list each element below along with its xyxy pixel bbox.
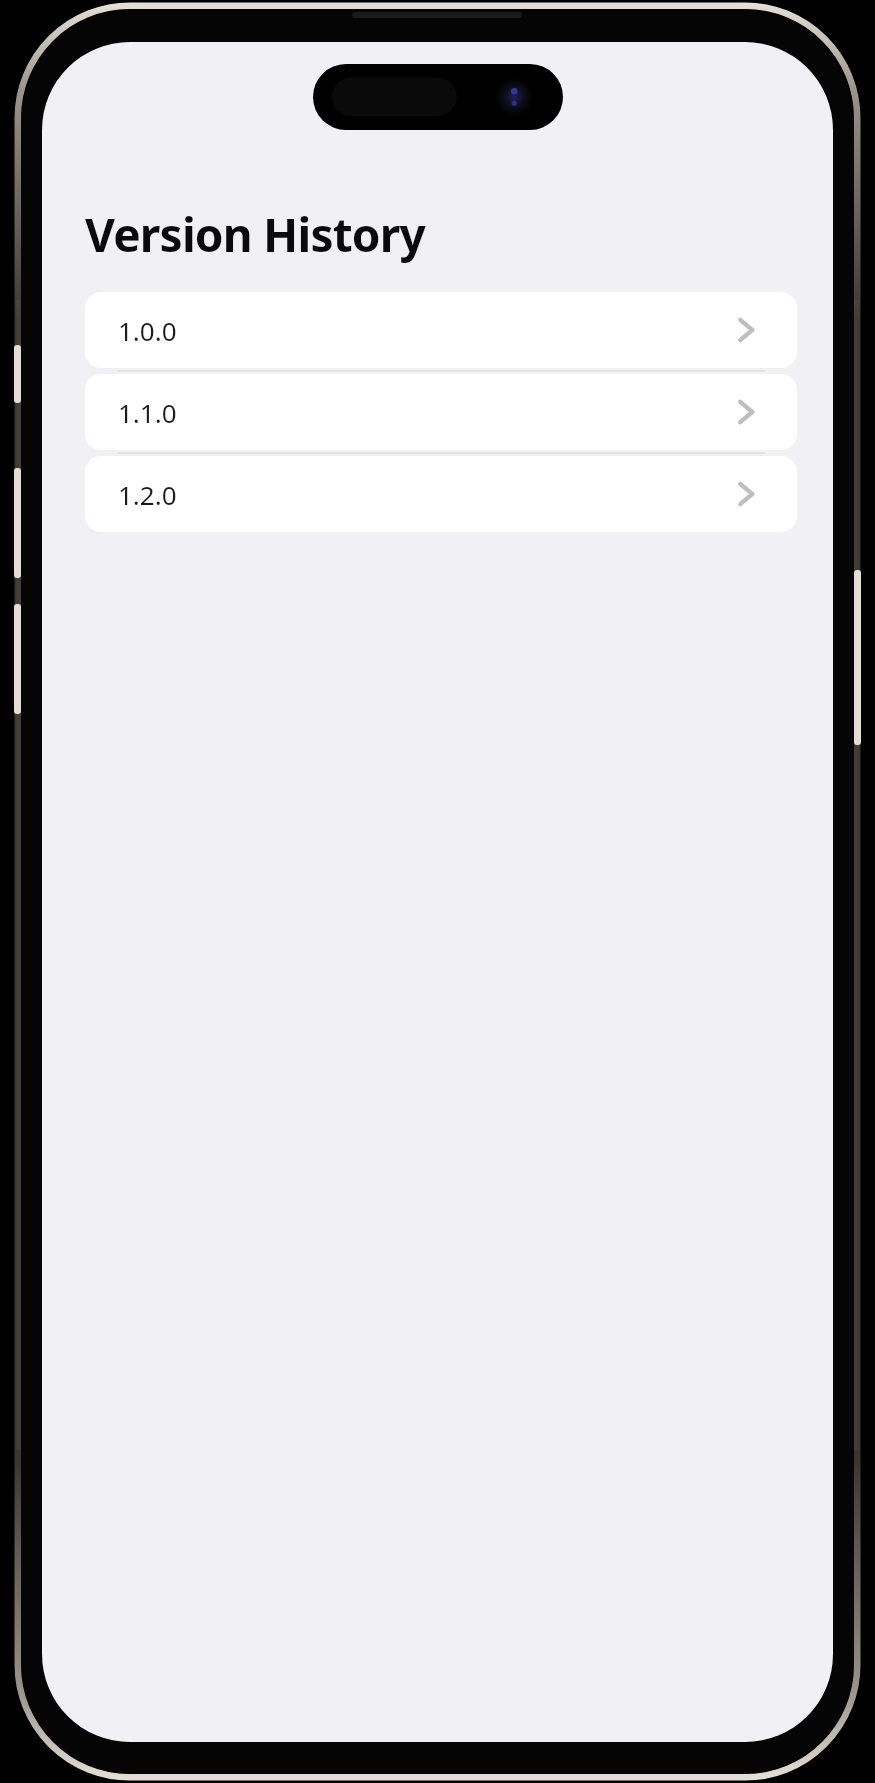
other: Open version details <box>733 395 759 429</box>
button[interactable]: 1.2.0 <box>85 456 797 532</box>
button[interactable]: 1.1.0 <box>85 374 797 450</box>
other: Open version details <box>733 313 759 347</box>
staticText: Version History <box>85 203 426 266</box>
staticText: 1.0.0 <box>118 313 177 348</box>
other: Open version details <box>733 477 759 511</box>
staticText: 1.1.0 <box>118 395 177 430</box>
staticText: 1.2.0 <box>118 477 177 512</box>
button[interactable]: 1.0.0 <box>85 292 797 368</box>
